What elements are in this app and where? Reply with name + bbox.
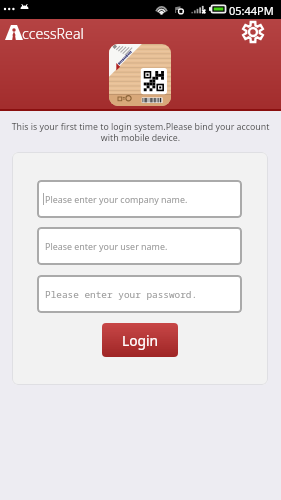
staticText: ccessReal (22, 24, 84, 43)
staticText: 05:44PM (229, 3, 274, 18)
staticText: Please enter your user name. (45, 240, 168, 252)
staticText: Please enter your company name. (45, 193, 188, 205)
button[interactable]: Please enter your user name. (37, 227, 242, 265)
button[interactable]: Please enter your password. (37, 275, 242, 313)
button[interactable]: Settings (240, 20, 266, 44)
staticText: Login (122, 331, 159, 350)
staticText: Please enter your password. (45, 288, 198, 301)
button[interactable]: Please enter your company name. (37, 180, 242, 218)
staticText: This is your first time to login system.… (9, 121, 272, 143)
button[interactable]: Login (102, 323, 178, 357)
